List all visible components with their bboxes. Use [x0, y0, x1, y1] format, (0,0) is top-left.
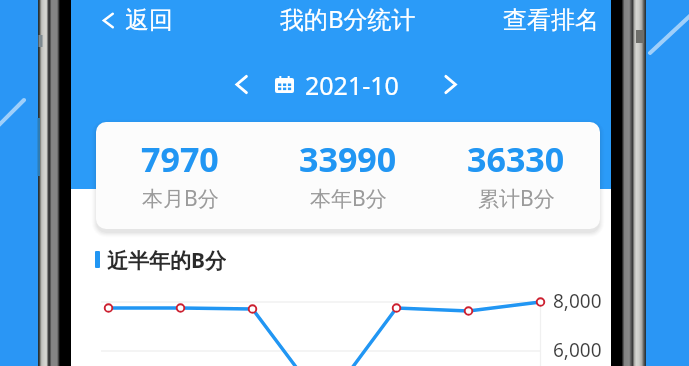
button[interactable]: 7970 [96, 122, 600, 229]
button[interactable]: Previous month [225, 65, 258, 104]
staticText: 本年B分 [310, 184, 387, 213]
staticText: 6,000 [553, 337, 602, 363]
staticText: 7970 [141, 136, 219, 182]
staticText: 33990 [299, 136, 397, 182]
staticText: 我的B分统计 [280, 2, 416, 35]
staticText: 8,000 [553, 288, 602, 314]
staticText: 查看排名 [503, 5, 599, 35]
staticText: 2021-10 [305, 68, 399, 102]
staticText: 近半年的B分 [107, 246, 226, 272]
staticText: 返回 [125, 5, 173, 35]
button[interactable]: 查看排名 [485, 2, 617, 38]
staticText: 累计B分 [478, 184, 555, 213]
staticText: 36330 [467, 136, 565, 182]
button[interactable]: Next month [434, 65, 467, 104]
button[interactable]: 返回 [71, 2, 189, 38]
staticText: 本月B分 [142, 184, 219, 213]
